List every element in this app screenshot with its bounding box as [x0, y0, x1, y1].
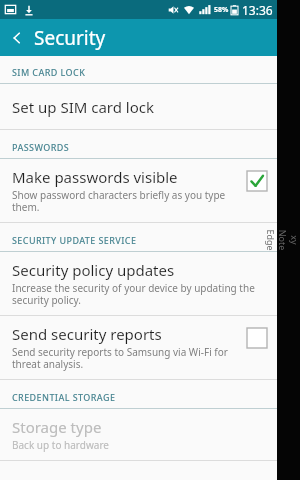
staticText: Security [34, 25, 106, 51]
staticText: PASSWORDS [12, 141, 70, 153]
staticText: SIM CARD LOCK [12, 66, 86, 78]
button[interactable]: Set up SIM card lock [0, 84, 277, 129]
button[interactable]: Send security reports [0, 316, 277, 379]
staticText: 58% [214, 5, 229, 15]
staticText: Show password characters briefly as you … [12, 188, 226, 214]
staticText: Make passwords visible [12, 167, 178, 187]
staticText: Send security reports to Samsung via Wi-… [12, 345, 228, 371]
button[interactable]: Storage type [0, 409, 277, 460]
button[interactable]: Security policy updates [0, 252, 277, 315]
staticText: 13:36 [242, 2, 273, 18]
staticText: Back up to hardware [12, 438, 109, 452]
staticText: Storage type [12, 417, 102, 437]
staticText: CREDENTIAL STORAGE [12, 391, 116, 403]
button[interactable]: Back [0, 21, 34, 55]
staticText: Increase the security of your device by … [12, 281, 255, 307]
staticText: Send security reports [12, 324, 162, 344]
button[interactable]: Make passwords visible [0, 159, 277, 222]
staticText: Galaxy Note Edge [264, 228, 300, 251]
staticText: Security policy updates [12, 260, 175, 280]
staticText: Set up SIM card lock [12, 97, 155, 117]
staticText: SECURITY UPDATE SERVICE [12, 234, 137, 246]
